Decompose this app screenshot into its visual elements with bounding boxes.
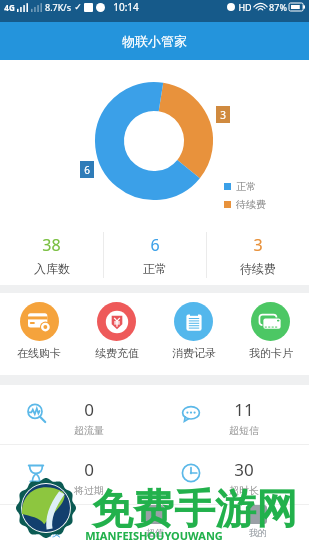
staticText: 87% <box>269 1 287 13</box>
button[interactable]: 38 <box>0 234 103 276</box>
staticText: 正常 <box>143 261 167 276</box>
staticText: 11 <box>234 398 254 421</box>
staticText: 3 <box>220 108 226 122</box>
button[interactable]: 我的 <box>206 505 309 538</box>
staticText: 0 <box>84 398 94 421</box>
staticText: 物联小管家 <box>122 33 187 49</box>
button[interactable]: 我的卡片 <box>232 302 309 360</box>
staticText: 38 <box>42 234 61 256</box>
staticText: 6 <box>150 234 160 256</box>
staticText: 续费充值 <box>95 346 139 360</box>
staticText: 我的 <box>249 527 267 538</box>
button[interactable]: 超值 <box>103 505 206 538</box>
staticText: MIANFEISHOUYOUWANG <box>85 528 223 543</box>
button[interactable]: 30 <box>154 445 309 497</box>
staticText: 8.7K/s <box>45 1 71 13</box>
staticText: 将过期 <box>74 484 104 497</box>
staticText: 超值 <box>146 527 164 538</box>
button[interactable]: 0 <box>0 445 154 497</box>
button[interactable]: 11 <box>154 385 309 437</box>
staticText: 3 <box>253 234 263 256</box>
staticText: 在线购卡 <box>17 346 61 360</box>
staticText: 6 <box>84 163 90 177</box>
staticText: 消费记录 <box>172 346 216 360</box>
staticText: 我的卡片 <box>249 346 293 360</box>
staticText: 待续费 <box>236 198 266 211</box>
staticText: 30 <box>234 458 254 481</box>
staticText: HD <box>238 1 252 13</box>
button[interactable]: 3 <box>207 234 309 276</box>
button[interactable]: 在线购卡 <box>0 302 78 360</box>
staticText: 待续费 <box>240 261 276 276</box>
staticText: 10:14 <box>113 0 139 14</box>
button[interactable]: 续费充值 <box>78 302 155 360</box>
staticText: 超流量 <box>74 424 104 437</box>
staticText: ✓ <box>74 2 82 12</box>
staticText: 超时长 <box>229 484 259 497</box>
button[interactable]: 消费记录 <box>155 302 232 360</box>
staticText: 入库数 <box>34 261 70 276</box>
staticText: 免费手游网 <box>92 484 297 536</box>
staticText: 0 <box>84 458 94 481</box>
staticText: 正常 <box>236 180 256 193</box>
staticText: 超短信 <box>229 424 259 437</box>
button[interactable]: 0 <box>0 385 154 437</box>
button[interactable]: 6 <box>104 234 206 276</box>
button[interactable]: 首页 <box>0 505 103 538</box>
staticText: 4G <box>4 2 15 13</box>
staticText: 首页 <box>43 527 61 538</box>
